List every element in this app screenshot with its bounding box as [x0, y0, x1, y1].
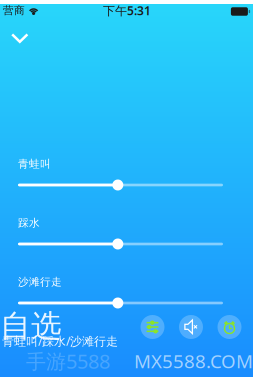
staticText: 沙滩行走 [18, 275, 62, 288]
staticText: MX5588.COM [134, 349, 253, 373]
staticText: 青蛙叫 [18, 157, 51, 170]
button[interactable]: Equalizer [137, 312, 167, 342]
staticText: 自选 [0, 307, 62, 345]
staticText: 营商 [3, 4, 25, 17]
button[interactable]: Mute [176, 312, 206, 342]
staticText: 下午5:31 [103, 2, 151, 18]
staticText: 青蛙叫/踩水/沙滩行走 [2, 333, 118, 349]
staticText: 踩水 [18, 216, 40, 229]
button[interactable]: Close [4, 22, 36, 52]
button[interactable]: Sleep timer [214, 312, 244, 342]
staticText: 手游5588 [26, 348, 110, 374]
